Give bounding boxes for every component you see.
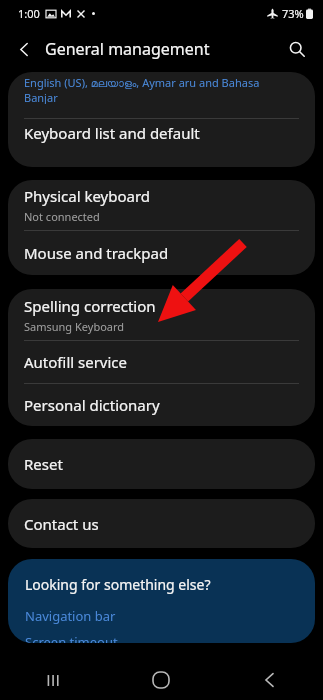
staticText: Screen timeout (25, 633, 118, 643)
button[interactable]: Keyboard list and default (8, 119, 315, 147)
button[interactable]: Mouse and trackpad (8, 231, 315, 275)
staticText: Navigation bar (25, 607, 116, 625)
staticText: Looking for something else? (25, 575, 211, 594)
staticText: 1:00 (18, 6, 40, 21)
button[interactable]: Personal dictionary (8, 384, 315, 426)
staticText: Keyboard list and default (24, 123, 200, 143)
staticText: Banjar (24, 90, 58, 104)
staticText: Mouse and trackpad (24, 243, 169, 263)
button[interactable]: Back (215, 660, 323, 700)
staticText: Not connected (24, 209, 100, 224)
staticText: Samsung Keyboard (24, 319, 125, 334)
staticText: 73% (282, 6, 304, 21)
button[interactable]: Reset (8, 439, 315, 489)
button[interactable]: Navigation bar (25, 607, 116, 625)
button[interactable]: Screen timeout (25, 633, 118, 643)
staticText: English (US), മലയാളം, Aymar aru and Baha… (24, 75, 260, 90)
button[interactable]: Contact us (8, 499, 315, 548)
button[interactable]: Recent apps (0, 660, 107, 700)
button[interactable]: Search (279, 31, 315, 67)
staticText: Physical keyboard (24, 186, 151, 206)
staticText: Personal dictionary (24, 395, 160, 415)
staticText: Autofill service (24, 352, 128, 372)
button[interactable]: Samsung Keyboard settings (8, 72, 315, 104)
button[interactable]: Autofill service (8, 341, 315, 383)
button[interactable]: Home (107, 660, 215, 700)
button[interactable]: Physical keyboard (8, 180, 315, 230)
staticText: Contact us (24, 514, 99, 534)
staticText: General management (45, 38, 210, 60)
staticText: Spelling correction (24, 296, 156, 316)
button[interactable]: Back (6, 31, 42, 67)
button[interactable]: Spelling correction (8, 289, 315, 340)
staticText: Reset (24, 454, 63, 474)
